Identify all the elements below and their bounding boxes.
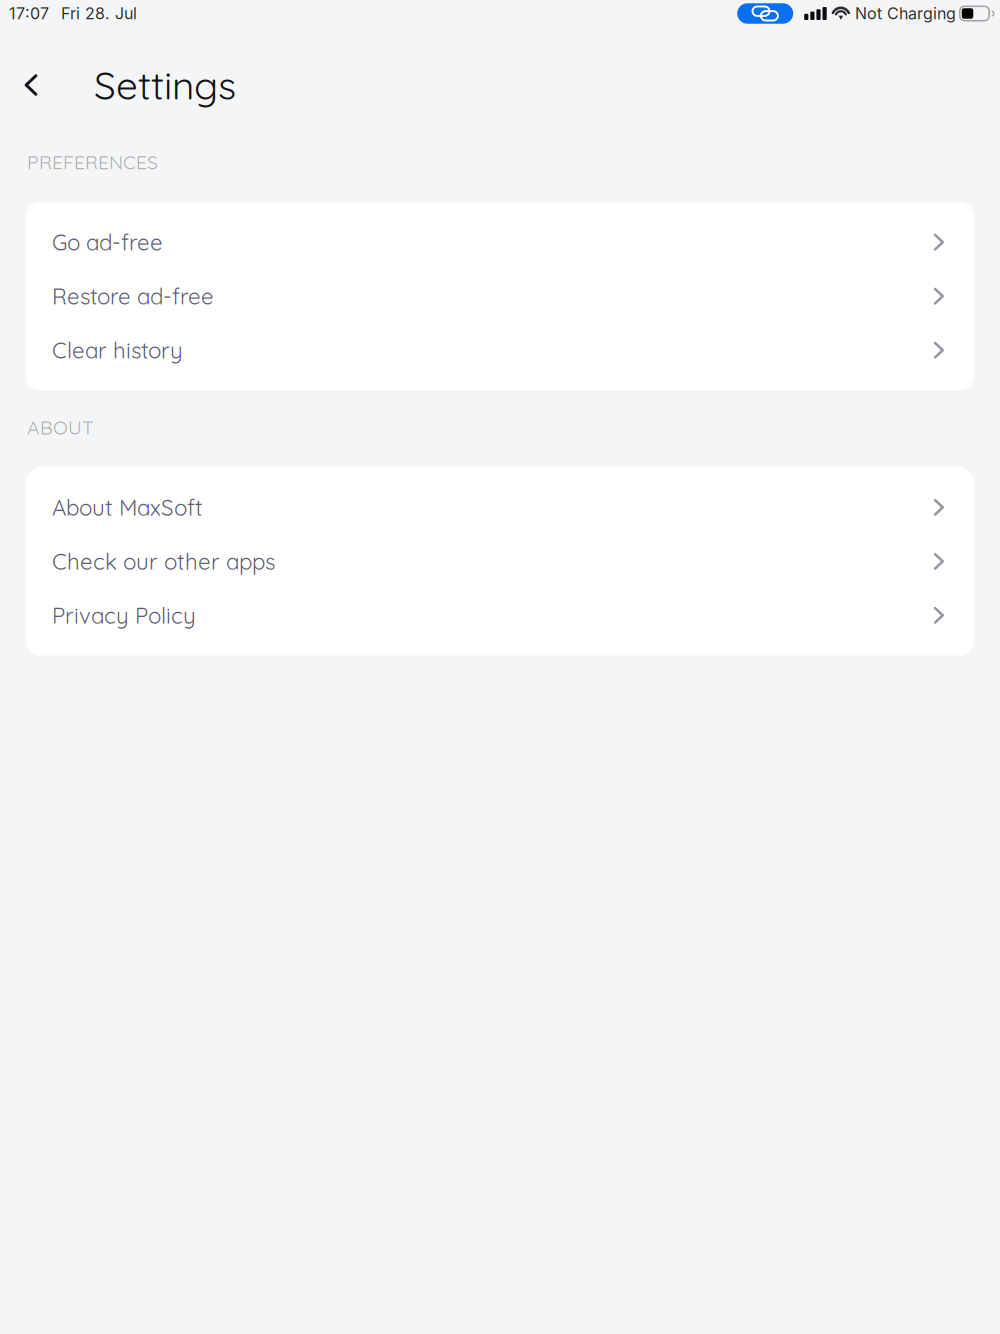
staticText: Restore ad-free xyxy=(52,282,214,310)
staticText: Not Charging xyxy=(855,4,956,23)
staticText: ABOUT xyxy=(27,415,94,439)
button[interactable]: Back xyxy=(9,56,53,110)
button[interactable]: Restore ad-free xyxy=(26,269,974,323)
staticText: PREFERENCES xyxy=(27,150,158,174)
button[interactable]: Privacy Policy xyxy=(26,588,974,642)
staticText: Privacy Policy xyxy=(52,601,196,629)
staticText: About MaxSoft xyxy=(52,493,203,521)
staticText: Clear history xyxy=(52,336,183,364)
button[interactable]: Clear history xyxy=(26,323,974,377)
staticText: Go ad-free xyxy=(52,228,163,256)
staticText: Settings xyxy=(94,61,236,109)
button[interactable]: Go ad-free xyxy=(26,215,974,269)
staticText: Fri 28. Jul xyxy=(61,4,137,23)
staticText: Check our other apps xyxy=(52,547,275,575)
staticText: 17:07 xyxy=(9,4,49,23)
button[interactable]: Check our other apps xyxy=(26,534,974,588)
button[interactable]: About MaxSoft xyxy=(26,480,974,534)
